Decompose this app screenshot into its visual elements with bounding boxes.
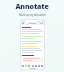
staticText: Mark up any document — [19, 13, 46, 17]
button[interactable]: Purple marker — [38, 65, 40, 67]
button[interactable]: Document toolbar — [22, 22, 43, 25]
button[interactable]: Green marker — [28, 65, 30, 67]
button[interactable]: Red marker — [32, 65, 34, 67]
button[interactable]: Highlighter — [25, 65, 27, 67]
staticText: Annotate — [15, 2, 49, 12]
button[interactable]: Eraser — [41, 65, 43, 67]
button[interactable]: Pen — [22, 65, 24, 67]
button[interactable] — [22, 57, 43, 62]
button[interactable]: Blue marker — [35, 65, 37, 67]
